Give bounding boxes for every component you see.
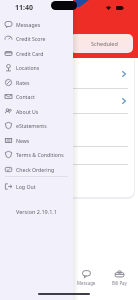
staticText: Terms & Conditions (16, 151, 64, 158)
staticText: Messages (16, 21, 41, 28)
button[interactable]: Messages (0, 17, 73, 31)
button[interactable]: Locations (0, 60, 73, 74)
button[interactable]: About Us (0, 104, 73, 118)
staticText: Bill Pay (112, 280, 127, 286)
staticText: About Us (16, 108, 39, 115)
button[interactable]: News (0, 133, 73, 147)
staticText: Log Out (16, 183, 36, 190)
button[interactable]: Scheduled (70, 34, 133, 53)
staticText: Contact (16, 93, 35, 100)
button[interactable]: Contact (0, 89, 73, 103)
staticText: Check Ordering (16, 166, 55, 173)
button[interactable]: Message (70, 270, 103, 286)
button[interactable]: Credit Score (0, 31, 73, 45)
staticText: News (16, 137, 30, 144)
button[interactable] (0, 59, 134, 88)
button[interactable] (0, 114, 134, 146)
staticText: Scheduled (91, 40, 118, 47)
button[interactable]: eStatements (0, 118, 73, 132)
staticText: Credit Card (16, 50, 44, 57)
button[interactable]: Bill Pay (103, 270, 136, 286)
staticText: 11:40 (15, 3, 33, 13)
button[interactable]: Check Ordering (0, 162, 73, 176)
button[interactable]: Credit Card (0, 46, 73, 60)
staticText: Credit Score (16, 35, 46, 42)
button[interactable] (0, 147, 134, 164)
staticText: Rates (16, 79, 30, 86)
button[interactable]: Log Out (0, 179, 73, 193)
button[interactable] (0, 89, 134, 113)
staticText: eStatements (16, 122, 47, 129)
staticText: Version 2.19.1.1 (0, 208, 73, 215)
staticText: Message (77, 280, 96, 286)
staticText: Locations (16, 64, 40, 71)
button[interactable]: Rates (0, 75, 73, 89)
button[interactable]: Terms & Conditions (0, 147, 73, 161)
